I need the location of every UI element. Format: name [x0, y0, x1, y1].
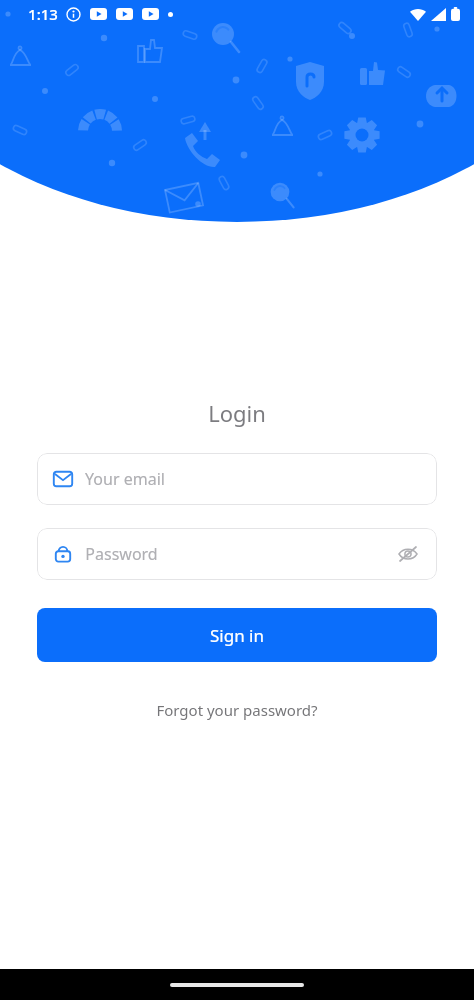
staticText: Sign in [210, 624, 264, 647]
staticText: Login [208, 398, 266, 428]
staticText: Forgot your password? [156, 700, 318, 720]
staticText: Your email [85, 468, 165, 490]
button[interactable]: Password [37, 528, 437, 580]
button[interactable]: Forgot your password? [146, 694, 328, 726]
staticText: 1:13 [28, 4, 58, 24]
button[interactable]: Show password [395, 541, 421, 567]
button[interactable]: Your email [37, 453, 437, 505]
button[interactable]: Sign in [37, 608, 437, 662]
staticText: Password [85, 543, 158, 565]
